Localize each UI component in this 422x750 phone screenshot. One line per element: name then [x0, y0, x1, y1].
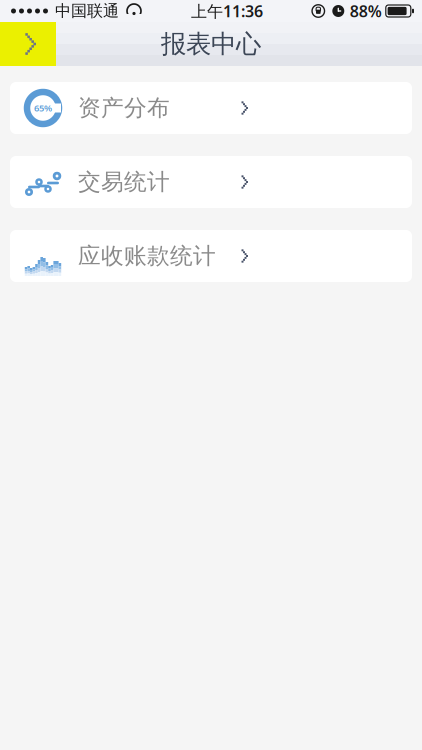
staticText: 应收账款统计: [78, 242, 216, 270]
staticText: 报表中心: [161, 28, 261, 59]
staticText: 交易统计: [78, 168, 170, 196]
button[interactable]: 应收账款统计: [10, 230, 412, 282]
button[interactable]: 65%: [10, 82, 412, 134]
button[interactable]: 交易统计: [10, 156, 412, 208]
staticText: 中国联通: [55, 1, 119, 21]
button[interactable]: 返回: [0, 22, 56, 66]
staticText: 65%: [34, 102, 52, 114]
staticText: 88%: [350, 0, 382, 22]
staticText: 资产分布: [78, 94, 170, 122]
staticText: 上午11:36: [191, 0, 263, 22]
